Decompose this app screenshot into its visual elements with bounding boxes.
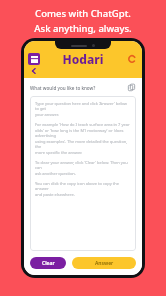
button[interactable]: Type your question here and click 'Answe… <box>30 96 136 251</box>
button[interactable]: Copy <box>127 83 136 92</box>
button[interactable]: Refresh <box>126 53 138 65</box>
button[interactable]: Menu <box>28 53 40 65</box>
staticText: You can click the copy icon above to cop… <box>35 181 131 191</box>
staticText: Type your question here and click 'Answe… <box>35 101 131 111</box>
staticText: more specific the answer. <box>35 150 83 155</box>
staticText: ask another question. <box>35 171 76 176</box>
staticText: Answer <box>95 260 114 267</box>
staticText: your answer. <box>35 112 59 117</box>
staticText: For example 'How do I teach surface area… <box>35 122 130 127</box>
staticText: What would you like to know? <box>30 85 127 91</box>
staticText: and paste elsewhere. <box>35 192 75 197</box>
staticText: To clear your answer, click 'Clear' belo… <box>35 160 131 170</box>
button[interactable]: Answer <box>72 257 136 269</box>
staticText: Hodari <box>40 51 126 67</box>
staticText: Clear <box>42 260 55 267</box>
button[interactable]: Back <box>29 66 39 76</box>
staticText: using examples'. The more detailed the q… <box>35 139 131 149</box>
staticText: Comes with ChatGpt. <box>35 7 131 20</box>
button[interactable]: Clear <box>30 257 66 269</box>
staticText: olds' or 'how long is the M1 motorway' o… <box>35 128 131 138</box>
staticText: Ask anything, always. <box>34 22 132 35</box>
